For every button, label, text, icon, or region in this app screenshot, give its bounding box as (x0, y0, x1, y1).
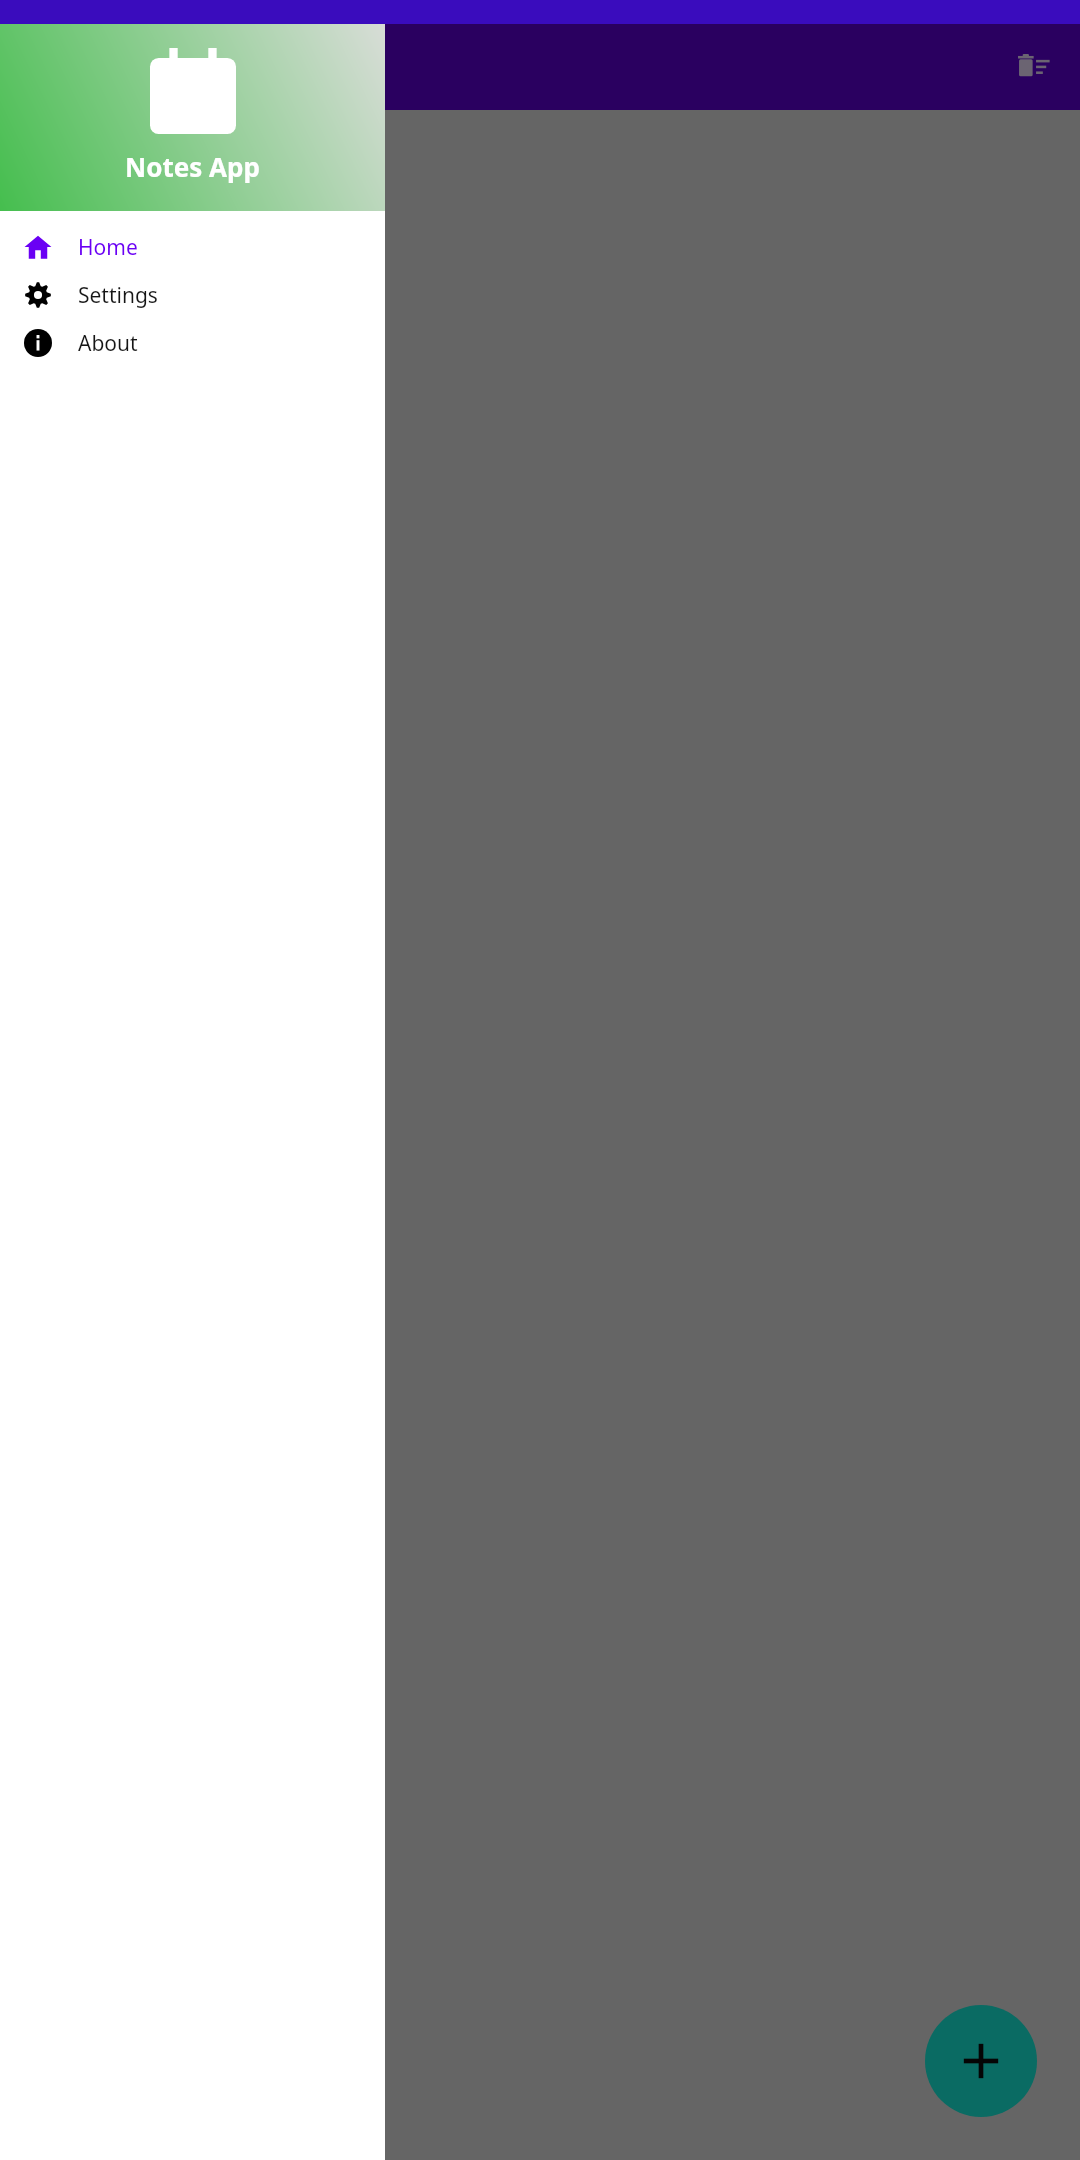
button[interactable]: Settings (0, 271, 385, 319)
button[interactable]: About (0, 319, 385, 367)
staticText: Notes App (125, 149, 260, 184)
staticText: Home (78, 233, 138, 262)
staticText: Settings (78, 281, 158, 310)
button[interactable]: Add note (925, 2005, 1037, 2117)
button[interactable]: Home (0, 223, 385, 271)
staticText: About (78, 329, 138, 358)
button[interactable]: Delete all notes (1006, 39, 1062, 95)
